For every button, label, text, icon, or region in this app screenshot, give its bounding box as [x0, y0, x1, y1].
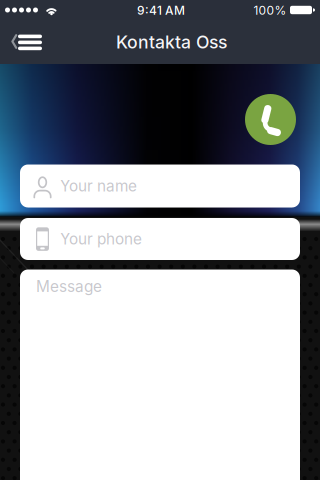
staticText: Your name: [60, 177, 137, 195]
staticText: Message: [36, 277, 102, 296]
staticText: 100%: [253, 3, 286, 18]
button[interactable]: Call: [245, 94, 296, 145]
button[interactable]: Menu: [0, 26, 52, 57]
staticText: Kontakta Oss: [116, 31, 227, 53]
staticText: 9:41 AM: [137, 3, 185, 18]
staticText: Your phone: [60, 230, 142, 248]
